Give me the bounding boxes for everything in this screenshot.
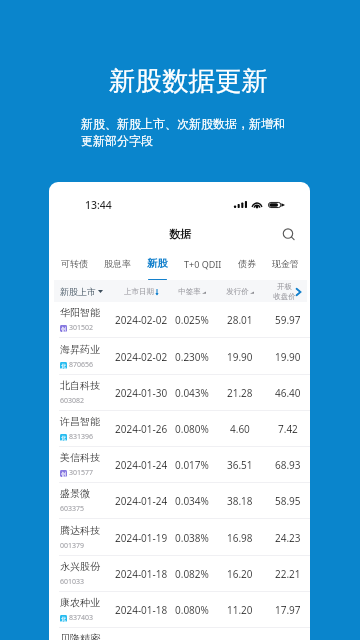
button[interactable]: 股息率	[104, 252, 131, 280]
staticText: 19.90	[275, 350, 301, 364]
staticText: 2024-01-19	[115, 531, 168, 545]
staticText: 831396	[69, 432, 94, 442]
button[interactable]: 康农种业	[49, 592, 310, 628]
staticText: 0.038%	[175, 531, 209, 545]
staticText: 2024-02-02	[115, 350, 168, 364]
staticText: 新股、新股上市、次新股数据，新增和更新部分字段	[81, 116, 288, 149]
staticText: 001379	[60, 541, 85, 551]
staticText: 17.97	[275, 603, 301, 617]
staticText: 新股数据更新	[109, 64, 268, 97]
staticText: 北	[61, 363, 66, 369]
staticText: 11.20	[227, 603, 253, 617]
staticText: 603375	[60, 504, 85, 514]
staticText: 数据	[169, 227, 191, 241]
button[interactable]: 华阳智能	[49, 302, 310, 338]
staticText: T+0 QDII	[184, 258, 222, 270]
staticText: 新股上市	[60, 286, 96, 297]
button[interactable]: 债券	[238, 252, 256, 280]
staticText: 中签率	[178, 287, 201, 296]
button[interactable]: 许昌智能	[49, 411, 310, 447]
button[interactable]: 发行价	[213, 287, 266, 296]
staticText: 开板 收盘价	[273, 282, 296, 301]
button[interactable]: T+0 QDII	[184, 252, 222, 280]
button[interactable]: 可转债	[61, 252, 88, 280]
staticText: 19.90	[227, 350, 253, 364]
staticText: 28.01	[227, 313, 253, 327]
staticText: 59.97	[275, 313, 301, 327]
staticText: 24.23	[275, 531, 301, 545]
staticText: 2024-01-26	[115, 422, 168, 436]
staticText: 0.080%	[175, 603, 209, 617]
staticText: 许昌智能	[60, 415, 100, 428]
staticText: 16.98	[227, 531, 253, 545]
button[interactable]: 现金管理	[272, 252, 306, 280]
staticText: 0.017%	[175, 458, 209, 472]
staticText: 301577	[69, 468, 94, 478]
staticText: 康农种业	[60, 596, 100, 609]
staticText: 海昇药业	[60, 343, 100, 356]
staticText: 盛景微	[60, 487, 90, 500]
staticText: 2024-01-18	[115, 567, 168, 581]
staticText: 68.93	[275, 458, 301, 472]
staticText: 贝隆精密	[60, 632, 100, 640]
staticText: 现金管理	[272, 258, 306, 269]
staticText: 2024-01-24	[115, 494, 168, 508]
staticText: 0.230%	[175, 350, 209, 364]
staticText: 发行价	[226, 287, 249, 296]
staticText: 0.034%	[175, 494, 209, 508]
staticText: 0.043%	[175, 386, 209, 400]
staticText: 2024-01-18	[115, 603, 168, 617]
staticText: 38.18	[227, 494, 253, 508]
button[interactable]: 新股	[147, 252, 168, 280]
button[interactable]: More columns	[293, 286, 304, 297]
staticText: 腾达科技	[60, 524, 100, 537]
staticText: 新股	[147, 257, 168, 270]
staticText: 股息率	[104, 258, 131, 269]
staticText: 可转债	[61, 258, 88, 269]
staticText: 16.20	[227, 567, 253, 581]
staticText: 837403	[69, 613, 94, 623]
staticText: 创	[61, 471, 66, 477]
staticText: 601033	[60, 577, 85, 587]
staticText: 4.60	[230, 422, 250, 436]
button[interactable]: 海昇药业	[49, 339, 310, 375]
button[interactable]: 永兴股份	[49, 556, 310, 592]
staticText: 0.082%	[175, 567, 209, 581]
staticText: 北	[61, 435, 66, 441]
staticText: 2024-01-30	[115, 386, 168, 400]
staticText: 36.51	[227, 458, 253, 472]
button[interactable]: 开板 收盘价	[262, 282, 306, 301]
button[interactable]: 盛景微	[49, 483, 310, 519]
staticText: 7.42	[278, 422, 298, 436]
button[interactable]: Search	[279, 225, 297, 243]
button[interactable]: 腾达科技	[49, 520, 310, 556]
staticText: 北自科技	[60, 379, 100, 392]
button[interactable]: 北自科技	[49, 375, 310, 411]
button[interactable]: 贝隆精密	[49, 628, 310, 640]
staticText: 870656	[69, 360, 94, 370]
button[interactable]: 新股上市	[60, 286, 103, 297]
staticText: 创	[61, 326, 66, 332]
staticText: 美信科技	[60, 451, 100, 464]
staticText: 13:44	[85, 198, 112, 212]
staticText: 0.025%	[175, 313, 209, 327]
staticText: 2024-01-24	[115, 458, 168, 472]
staticText: 华阳智能	[60, 306, 100, 319]
staticText: 58.95	[275, 494, 301, 508]
staticText: 上市日期	[124, 287, 154, 296]
button[interactable]: 美信科技	[49, 447, 310, 483]
staticText: 46.40	[275, 386, 301, 400]
button[interactable]: 中签率	[171, 287, 213, 296]
button[interactable]: 上市日期	[112, 287, 171, 296]
staticText: 永兴股份	[60, 560, 100, 573]
staticText: 22.21	[275, 567, 301, 581]
staticText: 603082	[60, 396, 85, 406]
staticText: 2024-02-02	[115, 313, 168, 327]
staticText: 301502	[69, 323, 94, 333]
staticText: 0.080%	[175, 422, 209, 436]
staticText: 北	[61, 616, 66, 622]
